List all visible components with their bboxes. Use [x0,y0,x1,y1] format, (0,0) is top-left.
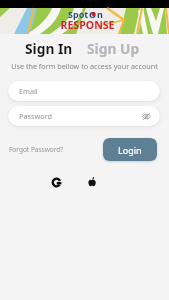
staticText: n [97,8,103,20]
staticText: Forgot Password? [9,145,64,154]
staticText: Sign Up [87,39,140,58]
button[interactable]: Password [8,106,160,126]
button[interactable]: Sign In [22,38,76,59]
staticText: Sign In [25,39,73,58]
button[interactable]: Sign in with Google [46,172,66,192]
staticText: RESPONSE [60,18,115,32]
button[interactable]: Sign Up [84,38,143,59]
button[interactable]: Sign in with Apple [82,172,102,192]
button[interactable]: Email [8,81,160,101]
staticText: Spot [68,8,89,20]
staticText: O [89,8,97,20]
staticText: Email [19,86,38,96]
staticText: Password [19,111,53,121]
staticText: Login [118,144,142,156]
button[interactable]: Forgot Password? [9,142,64,157]
staticText: Use the form bellow to access your accou… [0,61,169,71]
button[interactable]: Login [103,138,157,161]
